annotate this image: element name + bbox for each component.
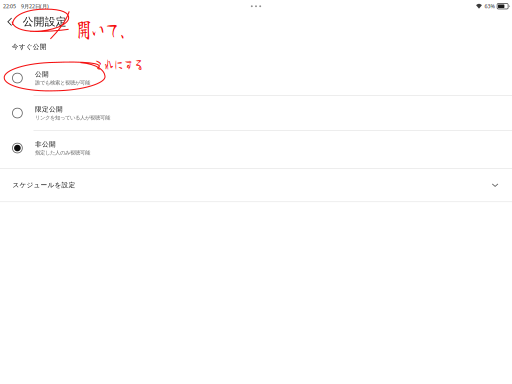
staticText: 指定した人のみ視聴可能 bbox=[35, 149, 90, 156]
staticText: 非公開 bbox=[35, 140, 56, 148]
staticText: スケジュールを設定 bbox=[13, 181, 76, 189]
staticText: 公開設定 bbox=[23, 15, 67, 28]
staticText: 今すぐ公開 bbox=[12, 43, 47, 51]
staticText: 公開 bbox=[35, 70, 49, 78]
staticText: 63% bbox=[485, 3, 495, 10]
button[interactable]: 公開 bbox=[0, 61, 512, 95]
button[interactable]: 限定公開 bbox=[0, 96, 512, 130]
staticText: 9月22日(月) bbox=[21, 3, 49, 10]
staticText: 誰でも検索と視聴が可能 bbox=[35, 79, 90, 86]
staticText: 限定公開 bbox=[35, 105, 63, 113]
staticText: これにする bbox=[93, 54, 143, 68]
button[interactable]: 非公開 bbox=[0, 131, 512, 165]
staticText: リンクを知っている人が視聴可能 bbox=[35, 114, 110, 121]
staticText: 22:05 bbox=[3, 3, 16, 10]
staticText: 開いて、 bbox=[77, 13, 133, 34]
button[interactable]: 戻る bbox=[0, 13, 19, 31]
button[interactable]: スケジュールを設定 bbox=[0, 169, 512, 201]
